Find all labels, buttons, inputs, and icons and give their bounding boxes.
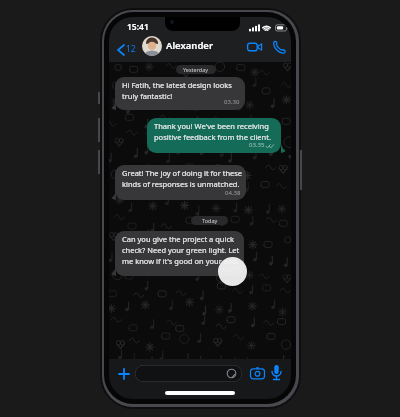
button[interactable] xyxy=(272,40,286,54)
staticText: Alexander xyxy=(166,39,214,52)
staticText: Hi Fatih, the latest design looks truly … xyxy=(122,80,232,101)
button[interactable] xyxy=(135,365,242,382)
button[interactable] xyxy=(118,368,130,380)
staticText: 03.35 xyxy=(249,141,265,149)
staticText: Great! The joy of doing it for these kin… xyxy=(122,168,243,189)
button[interactable]: Can you give the project a quick check? … xyxy=(115,231,244,276)
button[interactable] xyxy=(142,36,162,56)
staticText: 15:41 xyxy=(127,21,149,33)
button[interactable]: Great! The joy of doing it for these kin… xyxy=(115,165,246,200)
staticText: 03.30 xyxy=(224,98,240,106)
button[interactable]: 12 xyxy=(113,38,153,60)
staticText: Today xyxy=(202,217,218,224)
button[interactable]: Thank you! We've been receiving positive… xyxy=(147,118,281,153)
staticText: 12 xyxy=(126,43,136,55)
staticText: 04.38 xyxy=(225,189,241,197)
staticText: Can you give the project a quick check? … xyxy=(122,234,240,266)
button[interactable]: Hi Fatih, the latest design looks truly … xyxy=(115,77,245,110)
button[interactable] xyxy=(270,365,283,382)
button[interactable] xyxy=(250,366,265,381)
button[interactable] xyxy=(247,40,264,54)
staticText: Yesterday xyxy=(183,66,209,73)
staticText: Thank you! We've been receiving positive… xyxy=(154,121,271,142)
